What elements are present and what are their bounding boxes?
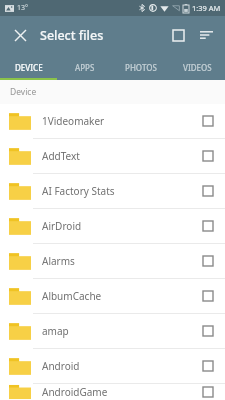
button[interactable]: Select AirDroid: [193, 211, 223, 241]
button[interactable]: 1Videomaker: [0, 104, 225, 138]
staticText: AlbumCache: [42, 289, 193, 303]
button[interactable]: DEVICE: [0, 54, 57, 80]
button[interactable]: Select AI Factory Stats: [193, 176, 223, 206]
staticText: AndroidGame: [42, 385, 193, 399]
button[interactable]: VIDEOS: [169, 54, 225, 80]
staticText: Device: [10, 86, 37, 98]
button[interactable]: Select AndroidGame: [193, 384, 223, 400]
button[interactable]: Select Android: [193, 351, 223, 381]
staticText: Alarms: [42, 254, 193, 268]
staticText: amap: [42, 324, 193, 338]
staticText: AirDroid: [42, 219, 193, 233]
button[interactable]: APPS: [57, 54, 113, 80]
button[interactable]: PHOTOS: [113, 54, 169, 80]
staticText: 1Videomaker: [42, 114, 193, 128]
staticText: PHOTOS: [125, 62, 157, 73]
button[interactable]: Alarms: [0, 244, 225, 278]
staticText: APPS: [75, 62, 95, 73]
button[interactable]: Close: [8, 23, 32, 47]
button[interactable]: AddText: [0, 139, 225, 173]
button[interactable]: Select 1Videomaker: [193, 106, 223, 136]
button[interactable]: Select amap: [193, 316, 223, 346]
button[interactable]: AirDroid: [0, 209, 225, 243]
staticText: AI Factory Stats: [42, 184, 193, 198]
staticText: DEVICE: [15, 62, 43, 73]
staticText: VIDEOS: [183, 62, 212, 73]
button[interactable]: AI Factory Stats: [0, 174, 225, 208]
button[interactable]: Select all: [164, 21, 192, 49]
button[interactable]: AlbumCache: [0, 279, 225, 313]
staticText: AddText: [42, 149, 193, 163]
staticText: Select files: [40, 27, 164, 44]
button[interactable]: Select AddText: [193, 141, 223, 171]
staticText: Android: [42, 359, 193, 373]
button[interactable]: Sort: [192, 21, 220, 49]
button[interactable]: amap: [0, 314, 225, 348]
staticText: 13°: [17, 3, 29, 13]
staticText: 1:39 AM: [192, 3, 221, 13]
button[interactable]: Select AlbumCache: [193, 281, 223, 311]
button[interactable]: AndroidGame: [0, 384, 225, 400]
button[interactable]: Select Alarms: [193, 246, 223, 276]
button[interactable]: Android: [0, 349, 225, 383]
